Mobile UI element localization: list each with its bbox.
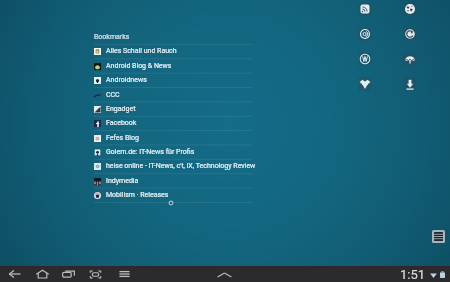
staticText: Androidnews <box>106 76 147 84</box>
staticText: Engadget <box>106 105 136 113</box>
button[interactable]: Dropbox <box>358 77 372 91</box>
button[interactable]: Facebook <box>94 116 252 130</box>
button[interactable]: CCC <box>94 88 252 102</box>
button[interactable]: All apps <box>432 230 445 243</box>
button[interactable]: Recent apps <box>57 266 79 282</box>
staticText: Fefes Blog <box>106 134 139 142</box>
button[interactable]: Back <box>3 266 25 282</box>
button[interactable]: RSS reader <box>358 2 372 16</box>
staticText: 1:51 <box>400 267 426 282</box>
button[interactable]: Android Blog & News <box>94 59 252 73</box>
staticText: Indymedia <box>106 177 139 185</box>
button[interactable]: Engadget <box>94 102 252 116</box>
button[interactable]: WordPress <box>358 52 372 66</box>
button[interactable]: Screenshot <box>84 266 106 282</box>
button[interactable]: Browser <box>403 2 417 16</box>
staticText: CCC <box>106 91 120 99</box>
button[interactable]: Mobilism · Releases <box>94 188 252 202</box>
staticText: Alles Schall und Rauch <box>106 47 177 55</box>
button[interactable]: Show notifications <box>213 266 235 282</box>
button[interactable]: Menu <box>113 266 135 282</box>
button[interactable]: Weather <box>403 52 417 66</box>
staticText: Facebook <box>106 119 137 127</box>
staticText: Golem.de: IT-News für Profis <box>106 148 195 156</box>
staticText: heise online - IT-News, c't, iX, Technol… <box>106 162 252 170</box>
button[interactable]: Night mode <box>403 27 417 41</box>
staticText: Mobilism · Releases <box>106 191 169 199</box>
button[interactable]: Androidnews <box>94 73 252 87</box>
button[interactable]: Golem.de: IT-News für Profis <box>94 145 252 159</box>
button[interactable]: Downloads <box>403 77 417 91</box>
button[interactable]: Fefes Blog <box>94 131 252 145</box>
button[interactable]: Home <box>31 266 53 282</box>
button[interactable]: heise online - IT-News, c't, iX, Technol… <box>94 159 252 173</box>
button[interactable]: Email <box>358 27 372 41</box>
button[interactable]: Alles Schall und Rauch <box>94 44 252 58</box>
staticText: Android Blog & News <box>106 62 172 70</box>
button[interactable]: Indymedia <box>94 174 252 188</box>
staticText: Bookmarks <box>94 33 130 41</box>
